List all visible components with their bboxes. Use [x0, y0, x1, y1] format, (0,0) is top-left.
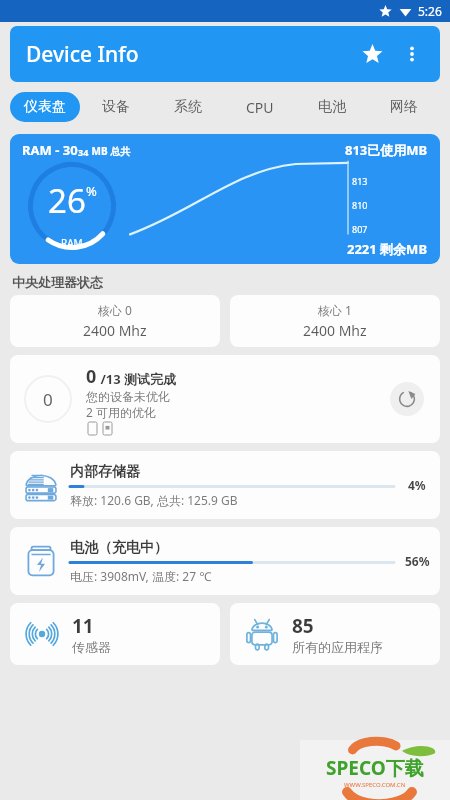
- staticText: %: [86, 182, 97, 200]
- staticText: RAM: [61, 236, 83, 250]
- staticText: 电池（充电中）: [70, 539, 168, 557]
- button[interactable]: Refresh: [390, 382, 424, 416]
- staticText: Device Info: [26, 40, 139, 69]
- staticText: 0: [43, 388, 53, 411]
- staticText: 5:26: [418, 3, 442, 19]
- button[interactable]: 85: [230, 603, 440, 665]
- button[interactable]: Favorite: [354, 36, 390, 72]
- button[interactable]: CPU: [224, 86, 296, 128]
- staticText: 2400 Mhz: [83, 321, 147, 340]
- button[interactable]: 内部存储器: [10, 451, 440, 519]
- staticText: 您的设备未优化: [86, 389, 170, 404]
- staticText: 4%: [408, 477, 426, 493]
- button[interactable]: 电池: [296, 86, 368, 128]
- staticText: 电池: [318, 98, 346, 116]
- button[interactable]: More options: [394, 36, 430, 72]
- staticText: 设备: [102, 98, 130, 116]
- staticText: 传感器: [72, 639, 111, 655]
- staticText: CPU: [246, 98, 274, 117]
- staticText: 2400 Mhz: [303, 321, 367, 340]
- button[interactable]: 11: [10, 603, 220, 665]
- staticText: SPECO下载: [326, 755, 424, 781]
- staticText: 内部存储器: [70, 463, 140, 481]
- staticText: 核心 0: [98, 302, 132, 318]
- button[interactable]: 电池（充电中）: [10, 527, 440, 595]
- button[interactable]: 网络: [368, 86, 440, 128]
- staticText: 电压: 3908mV, 温度: 27 ℃: [70, 568, 212, 584]
- button[interactable]: 仪表盘: [10, 92, 80, 122]
- staticText: 813已使用MB: [345, 141, 428, 159]
- staticText: 2221 剩余MB: [347, 240, 428, 258]
- staticText: 56%: [405, 553, 430, 569]
- staticText: 系统: [174, 98, 202, 116]
- staticText: WWW.SPECO.COM.CN: [344, 781, 406, 789]
- staticText: 0: [86, 364, 97, 389]
- button[interactable]: 系统: [152, 86, 224, 128]
- button[interactable]: RAM - 30: [10, 134, 440, 264]
- staticText: 所有的应用程序: [292, 639, 383, 655]
- staticText: MB 总共: [89, 144, 131, 158]
- button[interactable]: 核心 0: [10, 295, 220, 347]
- staticText: 813: [352, 175, 368, 187]
- button[interactable]: 核心 1: [230, 295, 440, 347]
- staticText: 807: [352, 223, 368, 235]
- staticText: 释放: 120.6 GB, 总共: 125.9 GB: [70, 492, 238, 508]
- staticText: 仪表盘: [24, 98, 66, 116]
- staticText: 810: [352, 199, 368, 211]
- staticText: 中央处理器状态: [12, 274, 103, 290]
- button[interactable]: 0: [10, 355, 440, 443]
- button[interactable]: 设备: [80, 86, 152, 128]
- staticText: 85: [292, 613, 314, 639]
- staticText: 核心 1: [318, 302, 352, 318]
- staticText: 34: [78, 146, 89, 158]
- staticText: 2 可用的优化: [86, 404, 156, 420]
- staticText: 网络: [390, 98, 418, 116]
- staticText: RAM - 30: [22, 141, 78, 159]
- staticText: /13 测试完成: [97, 370, 177, 388]
- staticText: 26: [48, 178, 86, 223]
- staticText: 11: [72, 613, 94, 639]
